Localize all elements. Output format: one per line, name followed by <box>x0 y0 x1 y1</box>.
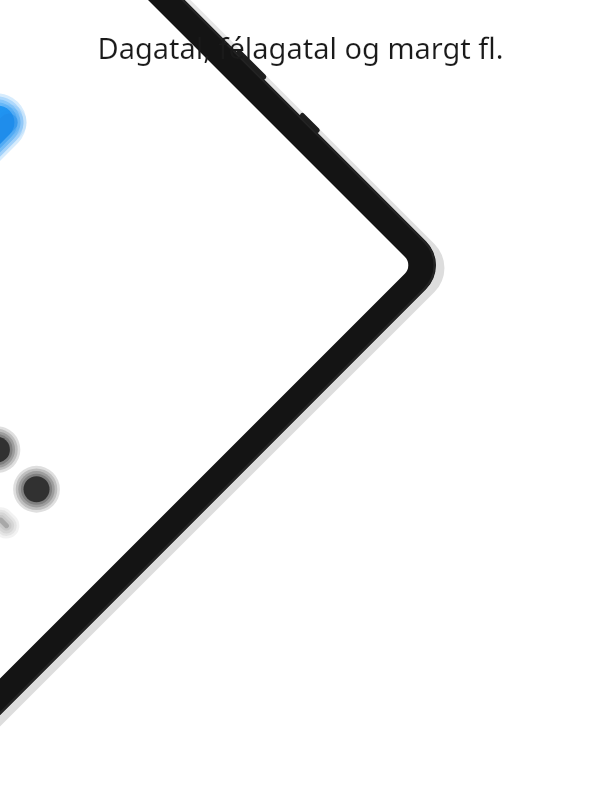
staticText: Dagatal, félagatal og margt fl. <box>97 28 504 67</box>
button[interactable]: Tablet showing the app <box>0 0 600 800</box>
